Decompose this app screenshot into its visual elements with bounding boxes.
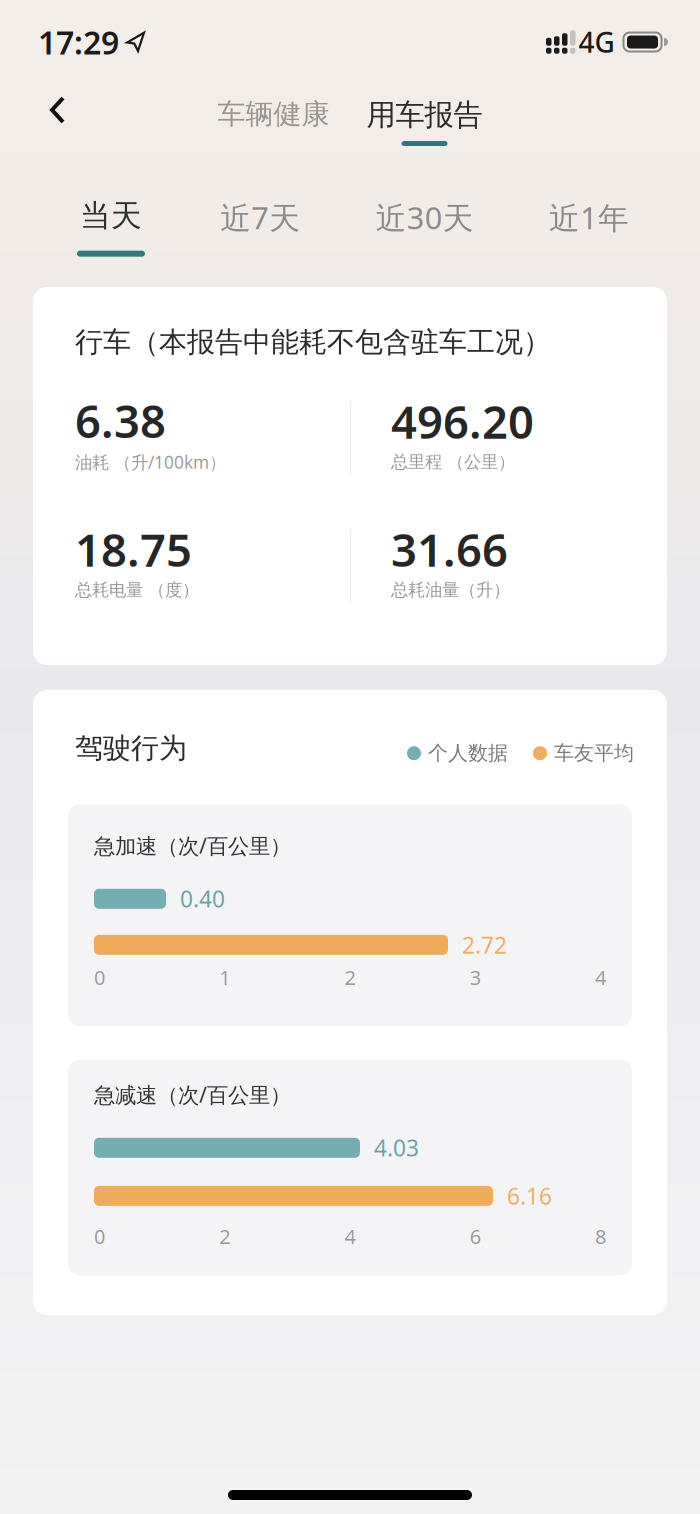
staticText: 近30天 bbox=[376, 197, 474, 238]
staticText: 6.38 bbox=[75, 390, 166, 450]
staticText: 18.75 bbox=[75, 519, 192, 579]
staticText: 车友平均 bbox=[554, 741, 634, 765]
staticText: 近1年 bbox=[549, 197, 629, 238]
staticText: 2 bbox=[344, 964, 355, 990]
staticText: 近7天 bbox=[220, 197, 300, 238]
button[interactable]: 用车报告 bbox=[366, 97, 482, 146]
button[interactable]: Back bbox=[40, 86, 75, 134]
staticText: 496.20 bbox=[391, 391, 534, 451]
staticText: 驾驶行为 bbox=[75, 731, 187, 765]
staticText: 1 bbox=[219, 964, 230, 990]
staticText: 17:29 bbox=[38, 21, 119, 63]
staticText: 急加速（次/百公里） bbox=[94, 831, 291, 860]
button[interactable]: 近7天 bbox=[220, 197, 300, 238]
staticText: 行车（本报告中能耗不包含驻车工况） bbox=[75, 325, 551, 359]
staticText: 4G bbox=[578, 23, 614, 61]
staticText: 4 bbox=[344, 1223, 355, 1249]
staticText: 当天 bbox=[80, 197, 142, 235]
staticText: 2 bbox=[219, 1223, 230, 1249]
button[interactable]: 当天 bbox=[77, 197, 145, 257]
staticText: 4 bbox=[595, 964, 606, 990]
button[interactable]: 车辆健康 bbox=[217, 97, 329, 131]
staticText: 急减速（次/百公里） bbox=[94, 1080, 291, 1109]
staticText: 车辆健康 bbox=[217, 97, 329, 131]
staticText: 4.03 bbox=[374, 1133, 419, 1163]
staticText: 0.40 bbox=[180, 884, 225, 914]
staticText: 总耗电量 （度） bbox=[75, 579, 199, 601]
staticText: 0 bbox=[94, 964, 105, 990]
staticText: 0 bbox=[94, 1223, 105, 1249]
staticText: 油耗 （升/100km） bbox=[75, 450, 226, 473]
staticText: 总里程 （公里） bbox=[391, 451, 515, 473]
staticText: 6.16 bbox=[507, 1181, 552, 1211]
staticText: 总耗油量（升） bbox=[391, 579, 510, 601]
staticText: 2.72 bbox=[462, 930, 507, 960]
staticText: 31.66 bbox=[391, 519, 508, 579]
staticText: 个人数据 bbox=[428, 741, 508, 765]
button[interactable]: 近1年 bbox=[549, 197, 629, 238]
button[interactable]: 近30天 bbox=[376, 197, 474, 238]
staticText: 3 bbox=[470, 964, 481, 990]
staticText: 8 bbox=[595, 1223, 606, 1249]
staticText: 用车报告 bbox=[366, 97, 482, 133]
staticText: 6 bbox=[470, 1223, 481, 1249]
